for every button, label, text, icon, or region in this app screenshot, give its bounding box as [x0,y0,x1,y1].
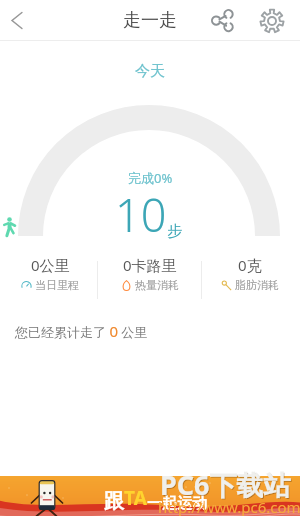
staticText: http://www.pc6.com [158,497,300,516]
staticText: 一起运动 [147,494,207,513]
staticText: 10 [115,184,167,245]
staticText: 走一走 [123,9,177,32]
button[interactable]: Share [206,4,239,37]
button[interactable]: Back [0,2,36,39]
staticText: 0公里 [31,255,70,275]
staticText: TA [124,485,147,511]
button[interactable]: 0公里 [0,255,100,292]
staticText: PC6下载站 [160,466,291,503]
staticText: 0克 [238,255,262,275]
staticText: 步 [167,222,182,241]
staticText: 跟 [104,489,124,514]
button[interactable]: 0卡路里 [100,255,200,292]
button[interactable]: 0克 [200,255,300,292]
staticText: 当日里程 [35,278,79,292]
staticText: 您已经累计走了 0 公里 [15,321,148,341]
staticText: PC6下载站 [161,467,292,504]
button[interactable]: 跟TA一起运动 [0,476,300,516]
staticText: 今天 [0,62,300,81]
staticText: 脂肪消耗 [235,278,279,292]
button[interactable]: Settings [255,4,288,37]
staticText: 完成0% [128,169,173,187]
staticText: 0卡路里 [123,255,177,275]
staticText: 热量消耗 [135,278,179,292]
